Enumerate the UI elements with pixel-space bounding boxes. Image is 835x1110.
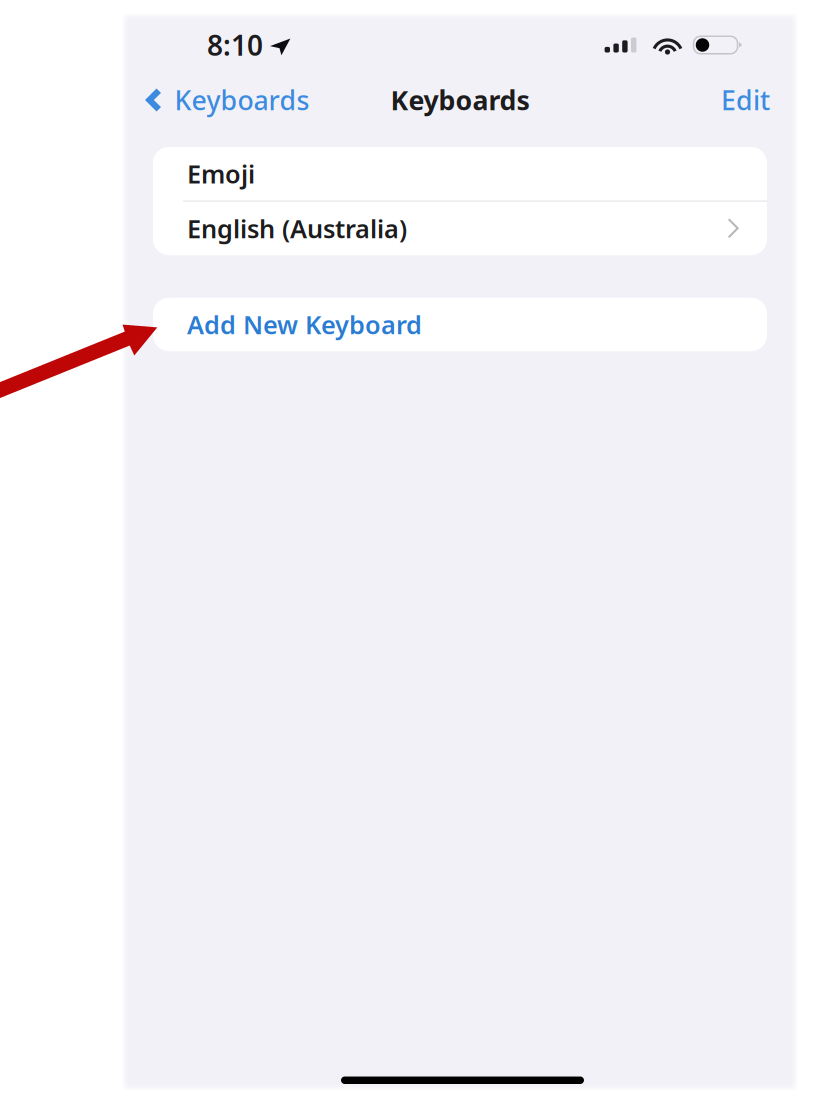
staticText: Keyboards xyxy=(390,82,529,118)
button[interactable]: English (Australia) xyxy=(153,202,767,255)
staticText: Keyboards xyxy=(174,82,309,118)
staticText: Add New Keyboard xyxy=(187,308,422,341)
button[interactable]: Keyboards xyxy=(123,77,319,123)
staticText: Emoji xyxy=(187,157,255,190)
button[interactable]: Edit xyxy=(707,77,784,123)
staticText: 8:10 xyxy=(207,26,263,64)
button[interactable]: Add New Keyboard xyxy=(153,298,767,351)
button[interactable]: Emoji xyxy=(153,147,767,200)
staticText: Edit xyxy=(721,82,770,118)
staticText: English (Australia) xyxy=(187,212,407,245)
